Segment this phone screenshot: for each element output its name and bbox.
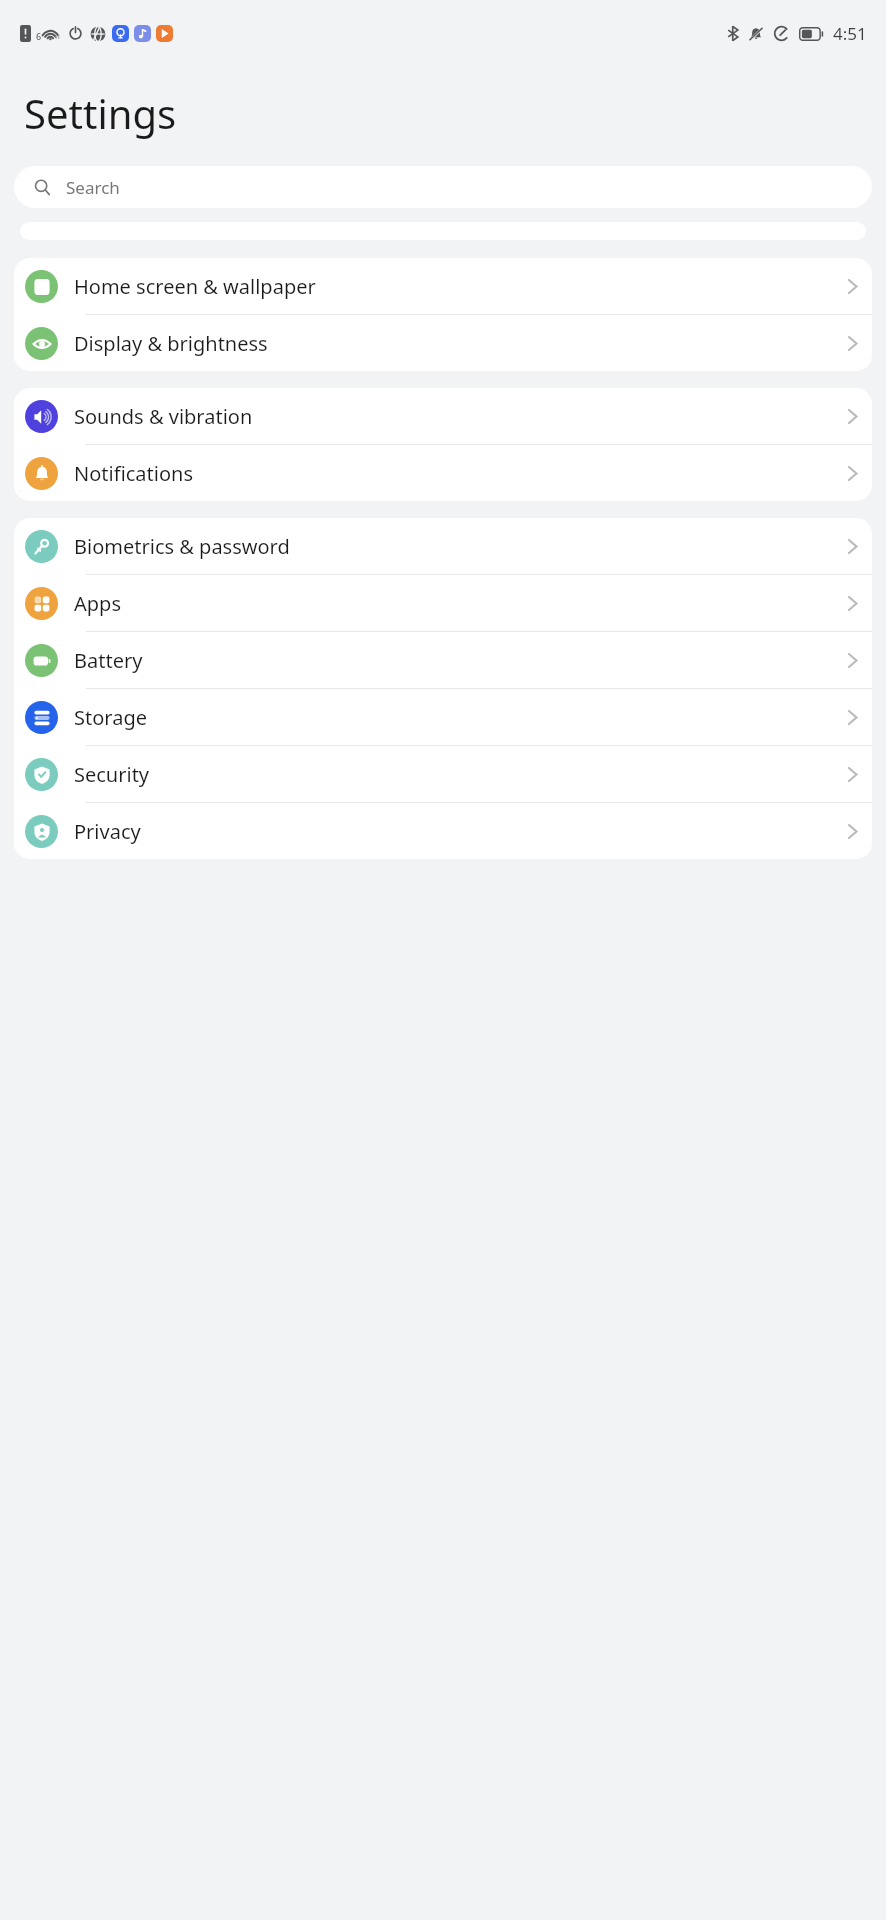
staticText: Security — [74, 761, 847, 788]
button[interactable]: Search — [14, 166, 872, 208]
staticText: Apps — [74, 590, 847, 617]
staticText: Home screen & wallpaper — [74, 273, 847, 300]
staticText: Notifications — [74, 460, 847, 487]
staticText: Storage — [74, 704, 847, 731]
staticText: 6 — [36, 30, 42, 42]
staticText: Display & brightness — [74, 330, 847, 357]
button[interactable]: Privacy — [14, 803, 872, 859]
button[interactable]: Apps — [14, 575, 872, 631]
button[interactable]: Home screen & wallpaper — [14, 258, 872, 314]
button[interactable]: Display & brightness — [14, 315, 872, 371]
staticText: 4:51 — [833, 22, 867, 45]
staticText: Search — [66, 176, 120, 199]
button[interactable]: Notifications — [14, 445, 872, 501]
staticText: Settings — [24, 86, 177, 140]
button[interactable]: Sounds & vibration — [14, 388, 872, 444]
button[interactable]: Biometrics & password — [14, 518, 872, 574]
staticText: Sounds & vibration — [74, 403, 847, 430]
staticText: Privacy — [74, 818, 847, 845]
staticText: Battery — [74, 647, 847, 674]
button[interactable]: Battery — [14, 632, 872, 688]
button[interactable]: Security — [14, 746, 872, 802]
button[interactable]: Storage — [14, 689, 872, 745]
staticText: Biometrics & password — [74, 533, 847, 560]
